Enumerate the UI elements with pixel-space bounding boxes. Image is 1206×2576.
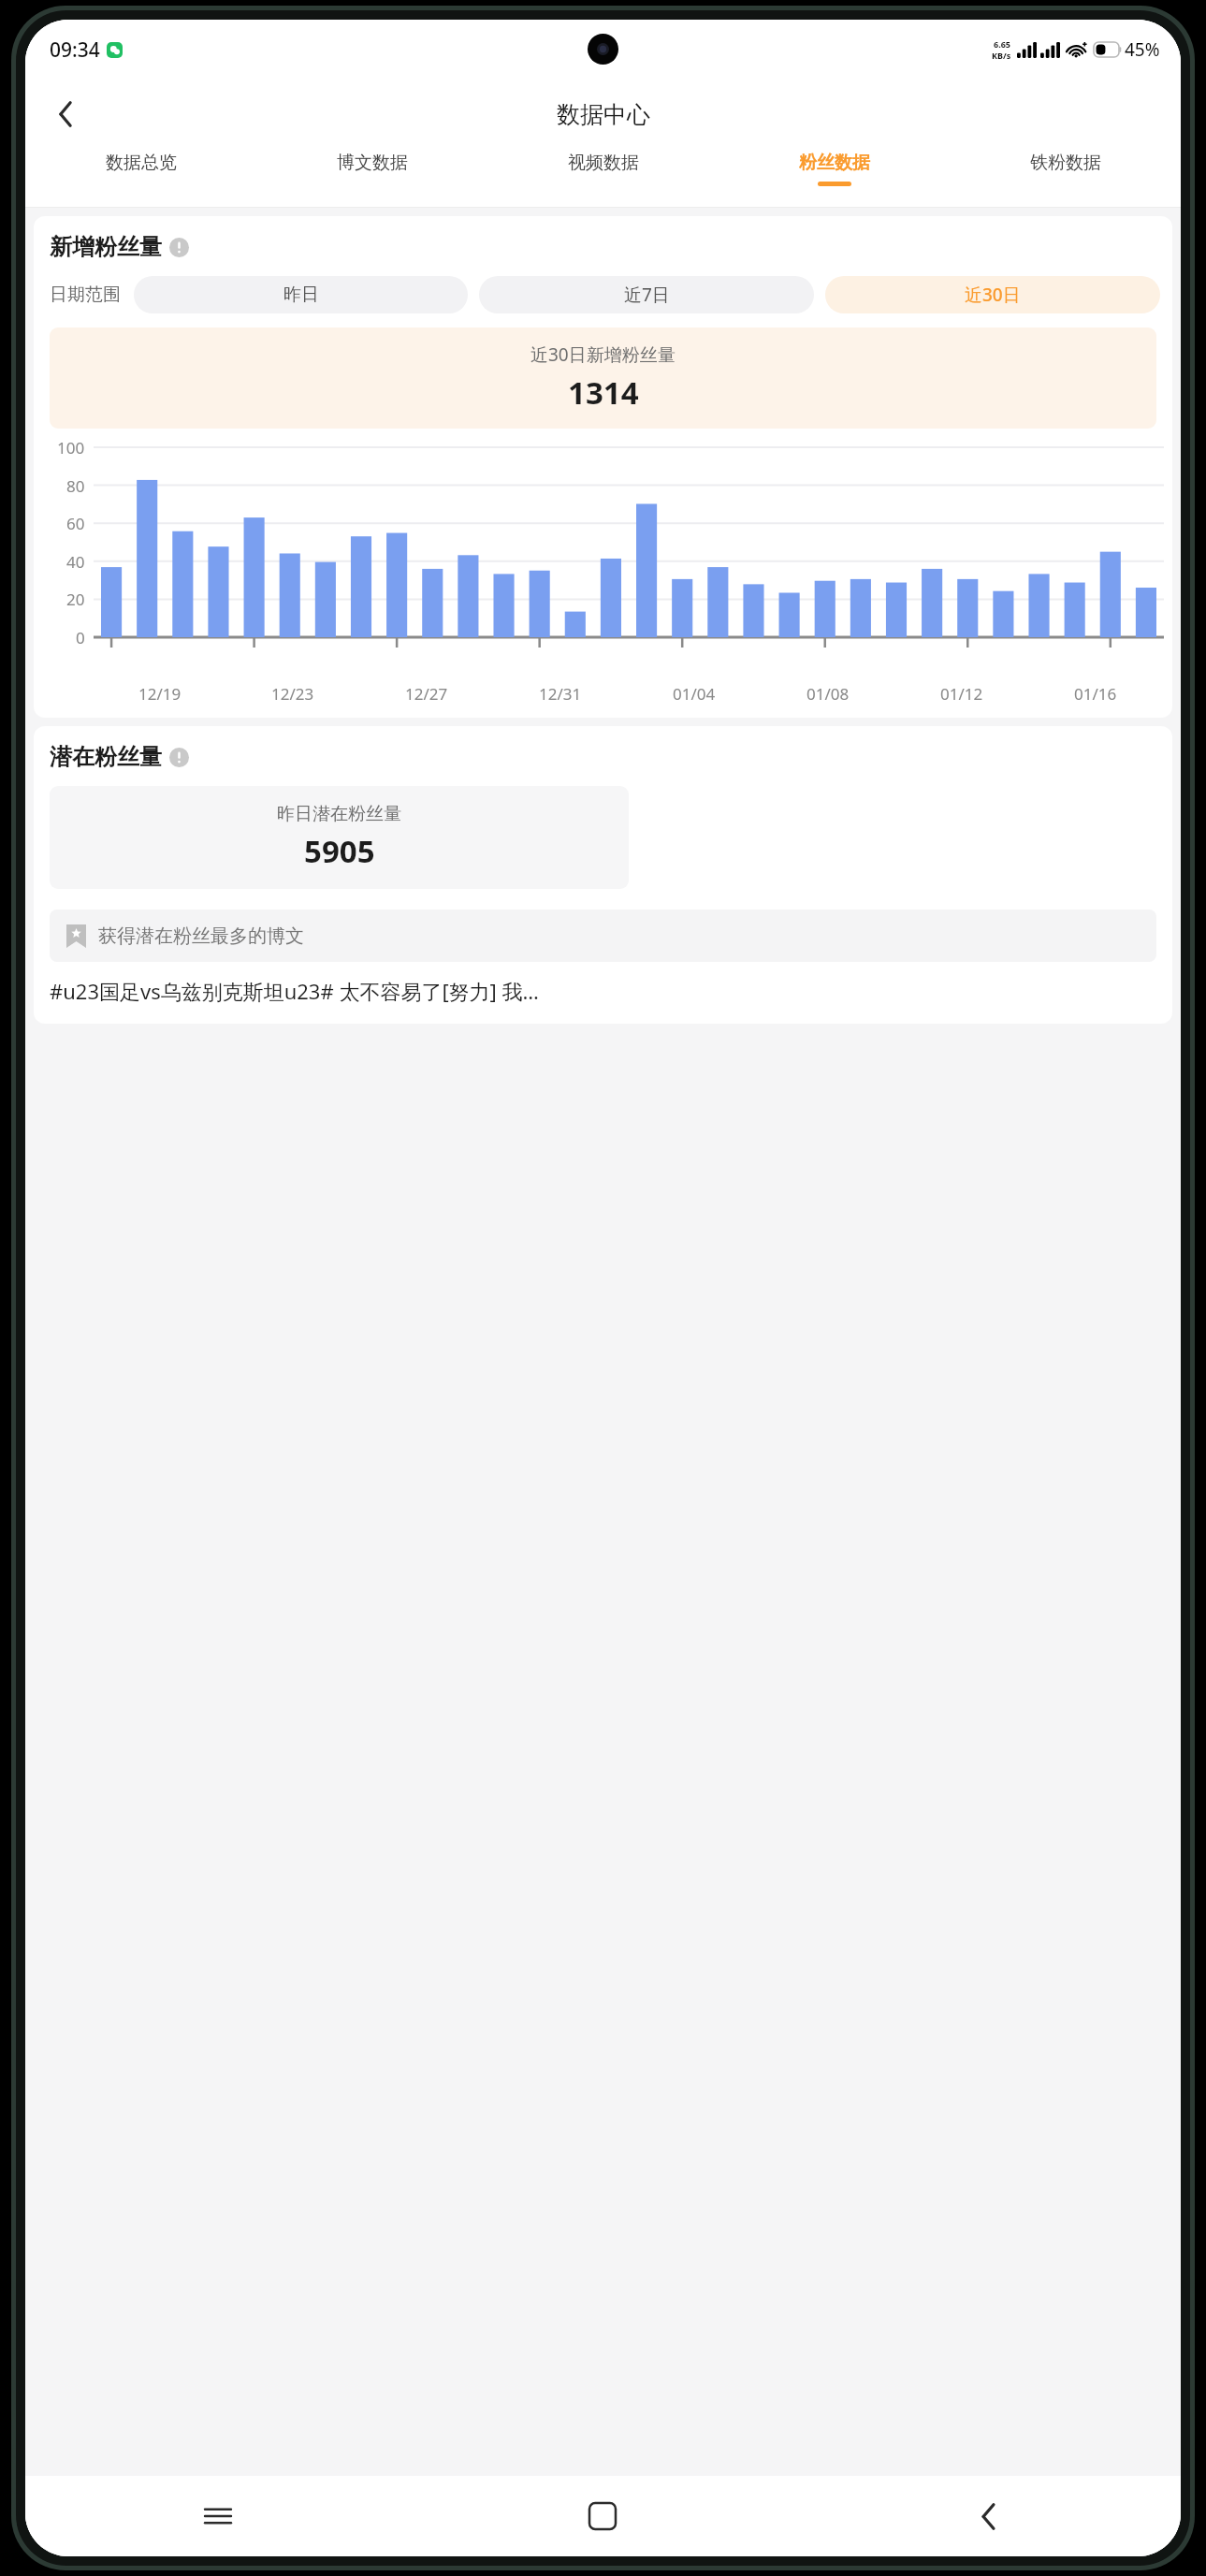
- button[interactable]: Info: [169, 238, 189, 257]
- button[interactable]: 昨日: [134, 276, 468, 313]
- button[interactable]: Info: [169, 748, 189, 767]
- staticText: 数据中心: [557, 100, 650, 129]
- button[interactable]: Home: [410, 2476, 795, 2556]
- staticText: 近30日: [965, 283, 1021, 307]
- staticText: 潜在粉丝量: [50, 743, 162, 771]
- button[interactable]: 近7日: [479, 276, 814, 313]
- staticText: 0: [76, 627, 85, 648]
- button[interactable]: 粉丝数据: [719, 149, 950, 207]
- button[interactable]: Back: [795, 2476, 1181, 2556]
- staticText: 12/23: [271, 683, 314, 705]
- button[interactable]: 近30日新增粉丝量: [50, 327, 1156, 429]
- staticText: 60: [66, 513, 85, 534]
- staticText: 01/04: [673, 683, 716, 705]
- staticText: 12/31: [539, 683, 582, 705]
- staticText: #u23国足vs乌兹别克斯坦u23# 太不容易了[努力] 我…: [50, 977, 539, 1005]
- staticText: 40: [66, 551, 85, 573]
- staticText: 12/19: [138, 683, 182, 705]
- staticText: 博文数据: [337, 152, 408, 174]
- staticText: 45%: [1125, 37, 1160, 62]
- staticText: 昨日: [283, 284, 319, 306]
- staticText: 昨日潜在粉丝量: [277, 803, 401, 825]
- staticText: 01/16: [1074, 683, 1117, 705]
- staticText: 获得潜在粉丝最多的博文: [98, 924, 304, 948]
- button[interactable]: 博文数据: [256, 149, 487, 207]
- staticText: 近30日新增粉丝量: [530, 342, 676, 367]
- staticText: 12/27: [405, 683, 448, 705]
- staticText: 粉丝数据: [799, 152, 870, 174]
- staticText: 01/08: [806, 683, 850, 705]
- staticText: KB/s: [992, 50, 1011, 61]
- staticText: 近7日: [624, 283, 670, 307]
- button[interactable]: 视频数据: [487, 149, 719, 207]
- staticText: 5905: [304, 830, 375, 872]
- button[interactable]: 铁粉数据: [950, 149, 1181, 207]
- staticText: 数据总览: [106, 152, 177, 174]
- staticText: 20: [66, 589, 85, 610]
- staticText: 铁粉数据: [1030, 152, 1101, 174]
- staticText: 100: [57, 437, 85, 458]
- button[interactable]: Back: [40, 89, 91, 139]
- staticText: 80: [66, 475, 85, 497]
- staticText: 视频数据: [568, 152, 639, 174]
- button[interactable]: 昨日潜在粉丝量: [50, 786, 629, 889]
- button[interactable]: Recents: [25, 2476, 410, 2556]
- staticText: 日期范围: [50, 284, 121, 306]
- staticText: 01/12: [940, 683, 983, 705]
- button[interactable]: 数据总览: [25, 149, 256, 207]
- staticText: 新增粉丝量: [50, 233, 162, 261]
- staticText: 09:34: [50, 36, 100, 64]
- button[interactable]: 获得潜在粉丝最多的博文: [50, 910, 1156, 962]
- staticText: 1314: [568, 371, 639, 414]
- button[interactable]: 近30日: [825, 276, 1160, 313]
- staticText: 6.65: [994, 38, 1010, 50]
